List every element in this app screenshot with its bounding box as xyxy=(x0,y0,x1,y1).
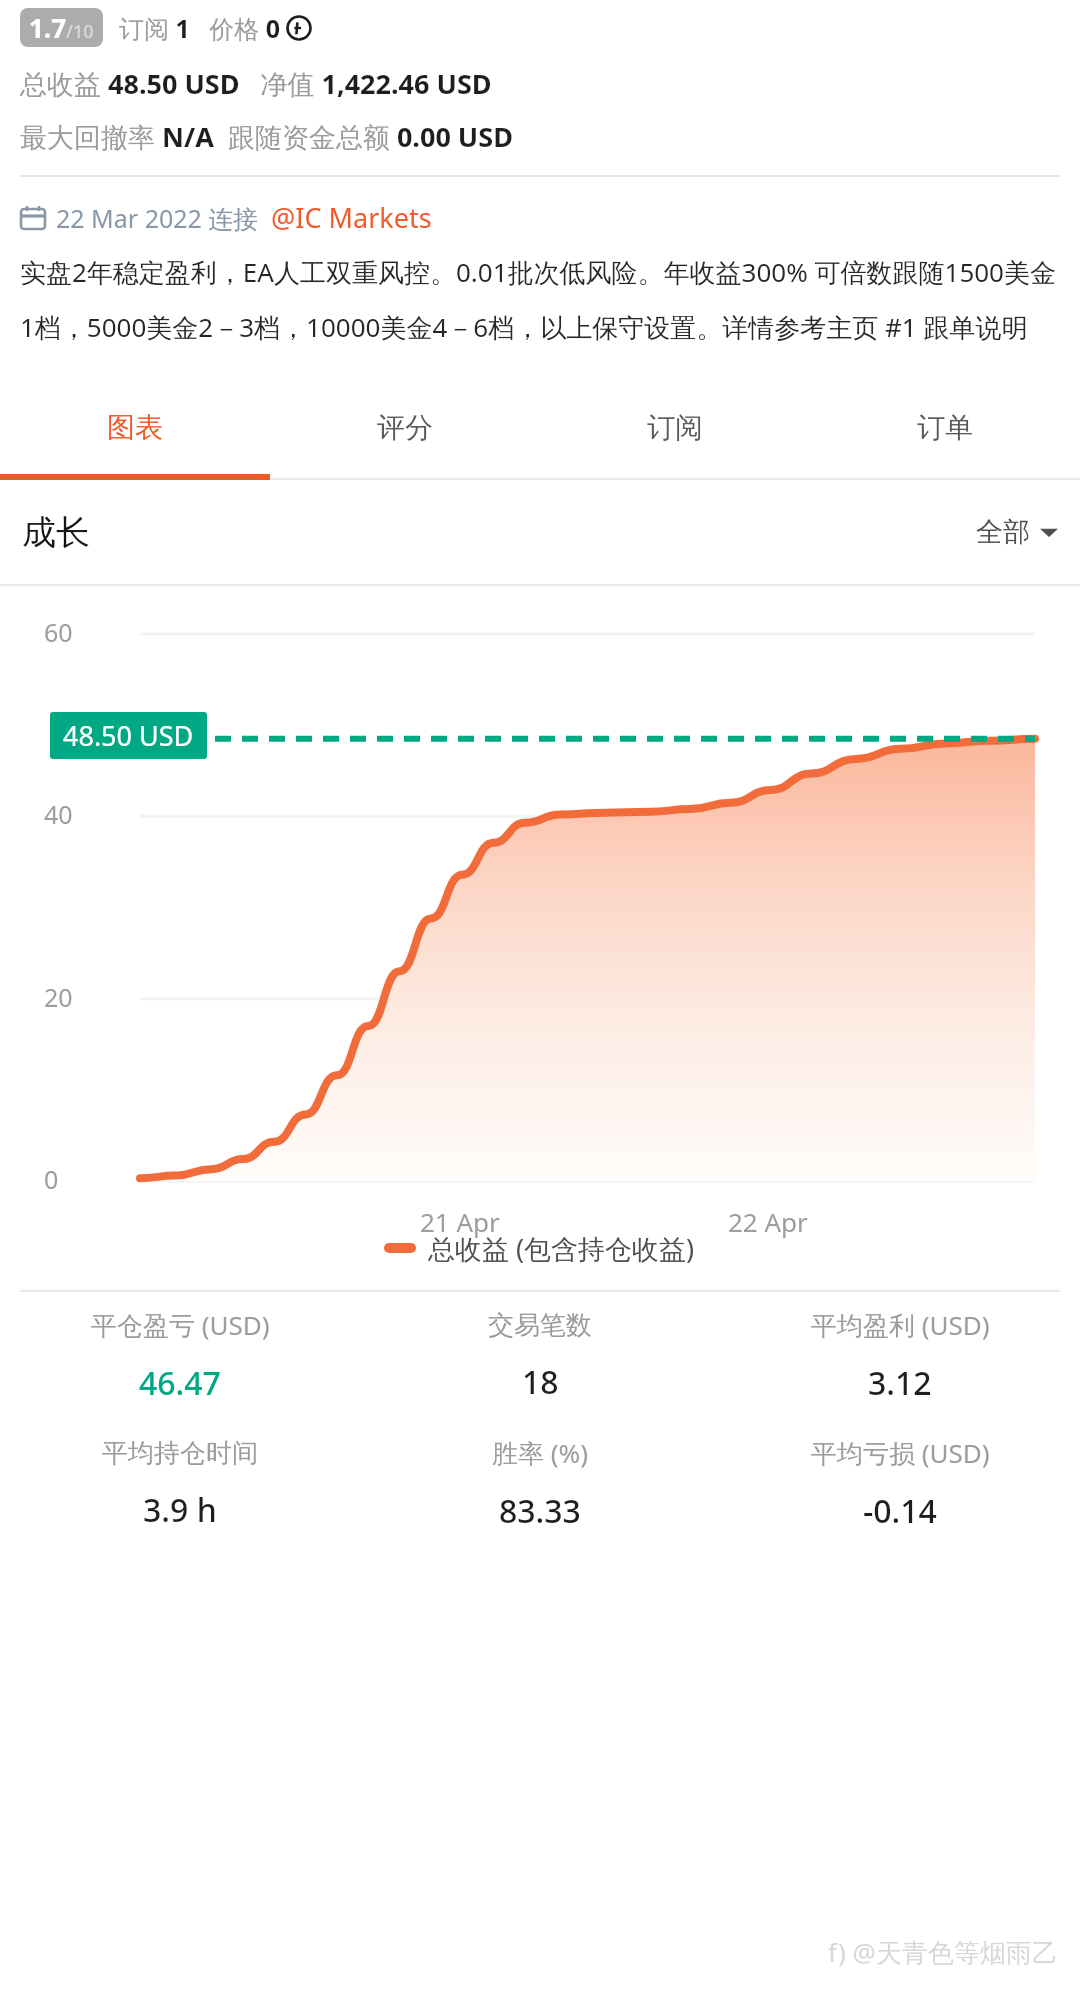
button[interactable]: 订单 xyxy=(810,374,1080,480)
staticText: 平均亏损 (USD) xyxy=(811,1435,990,1471)
button[interactable]: 1.7/10 xyxy=(29,10,94,45)
staticText: 最大回撤率 N/A 跟随资金总额 0.00 USD xyxy=(20,118,513,155)
staticText: 20 xyxy=(44,980,73,1014)
staticText: 总收益 48.50 USD 净值 1,422.46 USD xyxy=(20,65,492,102)
staticText: 成长 xyxy=(22,511,90,554)
staticText: 平仓盈亏 (USD) xyxy=(91,1307,270,1343)
staticText: 平均盈利 (USD) xyxy=(811,1307,990,1343)
staticText: 订阅 xyxy=(647,410,703,445)
other: Currency xyxy=(286,15,312,41)
staticText: 0 xyxy=(44,1162,59,1196)
staticText: 22 Apr xyxy=(728,1204,808,1239)
staticText: 胜率 (%) xyxy=(492,1435,588,1471)
staticText: 18 xyxy=(522,1360,559,1404)
staticText: 平均持仓时间 xyxy=(102,1437,258,1470)
staticText: 60 xyxy=(44,615,73,649)
staticText: f) @天青色等烟雨乙 xyxy=(828,1934,1058,1970)
staticText: 3.12 xyxy=(868,1361,932,1405)
staticText: @IC Markets xyxy=(271,199,432,236)
button[interactable]: 评分 xyxy=(270,374,540,480)
button[interactable]: 全部 xyxy=(976,515,1058,549)
staticText: 总收益 (包含持仓收益) xyxy=(428,1230,695,1267)
staticText: -0.14 xyxy=(863,1489,937,1533)
staticText: 40 xyxy=(44,797,73,831)
staticText: 实盘2年稳定盈利，EA人工双重风控。0.01批次低风险。年收益300% 可倍数跟… xyxy=(20,254,1060,344)
button[interactable]: @IC Markets xyxy=(271,199,432,236)
staticText: 46.47 xyxy=(139,1361,221,1405)
staticText: 1.7/10 xyxy=(29,10,94,45)
staticText: 3.9 h xyxy=(143,1488,217,1532)
staticText: 22 Mar 2022 连接 xyxy=(56,201,259,235)
other: Date xyxy=(20,205,46,231)
staticText: 21 Apr xyxy=(420,1204,500,1239)
staticText: 83.33 xyxy=(499,1489,581,1533)
staticText: 图表 xyxy=(107,410,163,445)
staticText: 48.50 USD xyxy=(63,717,194,754)
staticText: 订单 xyxy=(917,410,973,445)
button[interactable]: 订阅 xyxy=(540,374,810,480)
staticText: 评分 xyxy=(377,410,433,445)
button[interactable]: 48.50 USD xyxy=(63,717,194,754)
staticText: 订阅 1 价格 0 xyxy=(119,11,281,45)
button[interactable]: 图表 xyxy=(0,374,270,480)
staticText: 全部 xyxy=(976,515,1030,549)
staticText: 交易笔数 xyxy=(488,1309,592,1342)
